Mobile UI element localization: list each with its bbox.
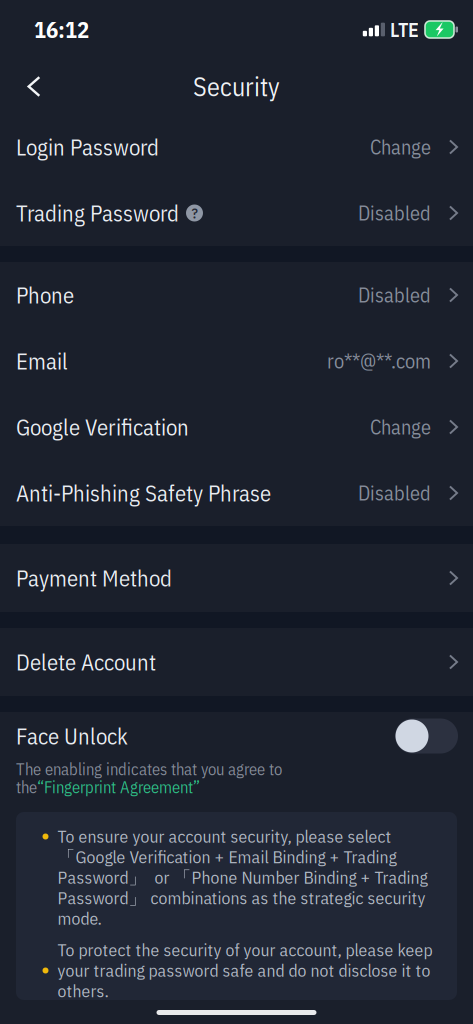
staticText: Security xyxy=(193,70,280,103)
staticText: Delete Account xyxy=(16,647,156,677)
button[interactable]: Anti-Phishing Safety Phrase xyxy=(0,460,473,526)
button[interactable]: Face Unlock toggle xyxy=(395,718,458,753)
staticText: ? xyxy=(191,203,197,223)
staticText: Password」 or 「Phone Number Binding + Tra… xyxy=(57,866,427,889)
staticText: others. xyxy=(57,979,108,1002)
staticText: Password」 combinations as the strategic … xyxy=(57,886,425,909)
button[interactable]: Login Password xyxy=(0,114,473,180)
staticText: Disabled xyxy=(358,282,431,308)
staticText: Login Password xyxy=(16,132,159,162)
staticText: Payment Method xyxy=(16,563,172,593)
staticText: The enabling indicates that you agree to xyxy=(16,758,282,780)
button[interactable]: Back xyxy=(10,62,58,110)
button[interactable]: Google Verification xyxy=(0,394,473,460)
staticText: Trading Password xyxy=(16,198,179,228)
staticText: 16:12 xyxy=(34,15,89,44)
button[interactable]: Email xyxy=(0,328,473,394)
button[interactable]: Phone xyxy=(0,262,473,328)
staticText: To ensure your account security, please … xyxy=(57,825,391,848)
staticText: ro**@**.com xyxy=(327,348,431,374)
staticText: Change xyxy=(370,414,431,440)
button[interactable]: Delete Account xyxy=(0,628,473,696)
staticText: Anti-Phishing Safety Phrase xyxy=(16,478,271,508)
button[interactable]: “Fingerprint Agreement” xyxy=(37,776,200,798)
staticText: Google Verification xyxy=(16,412,189,442)
staticText: LTE xyxy=(390,16,419,42)
staticText: mode. xyxy=(57,907,101,930)
staticText: Disabled xyxy=(358,200,431,226)
staticText: Email xyxy=(16,346,68,376)
staticText: the xyxy=(16,776,37,798)
staticText: 「Google Verification + Email Binding + T… xyxy=(57,845,396,868)
staticText: Change xyxy=(370,134,431,160)
staticText: Disabled xyxy=(358,480,431,506)
staticText: “Fingerprint Agreement” xyxy=(37,776,200,798)
button[interactable]: Trading Password xyxy=(0,180,473,246)
staticText: Phone xyxy=(16,280,74,310)
staticText: your trading password safe and do not di… xyxy=(57,959,430,982)
staticText: Face Unlock xyxy=(16,721,128,751)
button[interactable]: Payment Method xyxy=(0,544,473,612)
staticText: To protect the security of your account,… xyxy=(57,938,432,961)
